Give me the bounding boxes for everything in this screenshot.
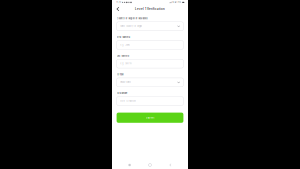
staticText: 11:51 [116,1,121,3]
button[interactable]: Back [114,5,121,12]
button[interactable]: Please select [117,78,183,87]
staticText: First name(s) [117,36,131,38]
staticText: e.g. JOHN [120,44,129,46]
button[interactable]: Submit [117,113,183,123]
staticText: ID Type [117,73,124,76]
staticText: Enter ID Number [120,100,136,102]
staticText: Level 1 Verification [135,7,165,11]
staticText: ID Number [117,92,128,95]
button[interactable]: Back [160,162,181,168]
button[interactable]: Select Country or Region [117,22,183,31]
button[interactable]: Recents [119,162,140,168]
staticText: Select Country or Region [120,25,142,27]
staticText: e.g. SMITH [120,62,131,65]
button[interactable]: e.g. SMITH [117,59,183,68]
button[interactable]: Enter ID Number [117,97,183,105]
button[interactable]: Home [140,162,160,168]
staticText: Country or Region of Residence [117,17,148,20]
staticText: Please select [120,81,131,83]
button[interactable]: e.g. JOHN [117,40,183,49]
staticText: 4G [172,1,174,3]
staticText: 75% [177,1,181,3]
staticText: Last name(s) [117,55,130,57]
staticText: Submit [145,116,154,119]
